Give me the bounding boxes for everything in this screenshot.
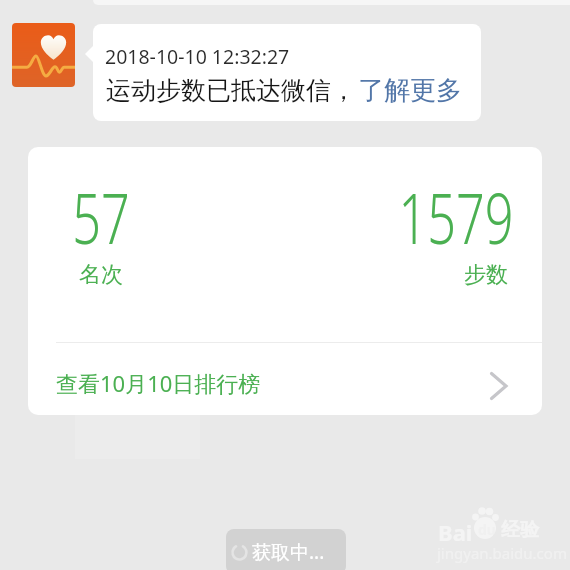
staticText: 获取中... [252,539,325,565]
button[interactable]: 查看10月10日排行榜 [28,343,542,415]
staticText: 查看10月10日排行榜 [56,368,261,398]
staticText: 57 [72,169,130,264]
staticText: 2018-10-10 12:32:27 [105,43,290,70]
staticText: 1579 [398,169,514,264]
staticText: du [478,520,496,539]
staticText: Bai [438,517,473,547]
staticText: 名次 [79,261,123,289]
staticText: 了解更多 [358,74,462,107]
staticText: 步数 [464,261,508,289]
button[interactable]: 了解更多 [358,74,462,107]
button[interactable] [12,23,75,87]
staticText: 经验 [501,518,539,542]
staticText: 运动步数已抵达微信， [106,75,356,106]
